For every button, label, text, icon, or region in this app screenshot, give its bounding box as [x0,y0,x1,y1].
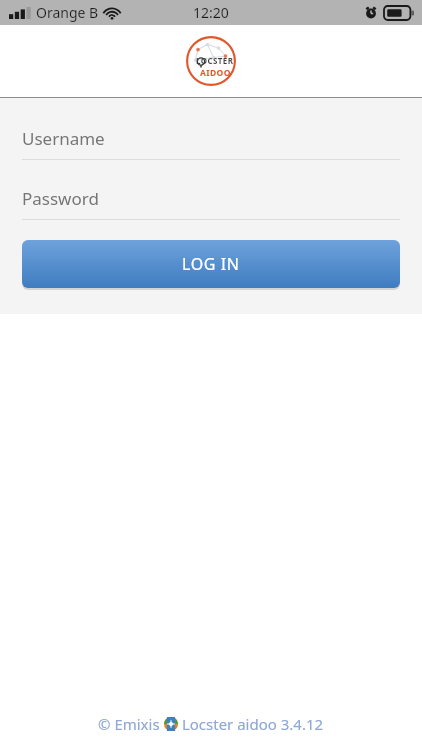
staticText: 12:20 [193,3,229,22]
button[interactable]: LOG IN [22,240,400,288]
button[interactable]: Username [22,125,400,160]
staticText: Password [22,187,99,210]
staticText: © Emixis [98,714,164,734]
staticText: Username [22,127,105,150]
button[interactable]: Password [22,185,400,220]
staticText: Locster aidoo 3.4.12 [178,714,324,734]
staticText: LOCSTER [196,55,234,66]
staticText: Orange B [36,3,99,22]
staticText: LOG IN [182,253,240,275]
staticText: AIDOO [200,67,231,79]
